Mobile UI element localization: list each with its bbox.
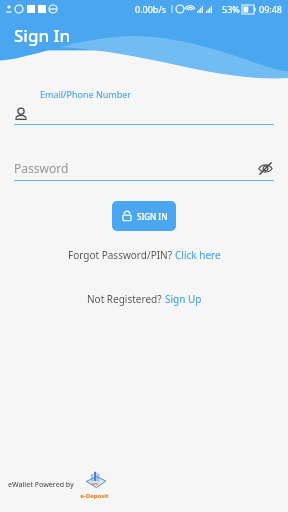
button[interactable]: Forgot Password/PIN?: [0, 248, 288, 262]
button[interactable]: Not Registered?: [0, 292, 288, 306]
button[interactable]: Show password: [256, 159, 274, 177]
staticText: Sign In: [14, 24, 71, 47]
staticText: Forgot Password/PIN?: [68, 248, 175, 262]
staticText: 09:48: [259, 3, 283, 15]
staticText: Sign Up: [165, 292, 202, 306]
staticText: eWallet Powered by: [8, 480, 74, 490]
button[interactable]: Password: [14, 159, 274, 177]
staticText: Click here: [175, 248, 221, 262]
staticText: SIGN IN: [137, 211, 168, 222]
staticText: e-Deposit: [80, 492, 109, 500]
staticText: 53%: [222, 3, 240, 15]
staticText: Not Registered?: [87, 292, 165, 306]
button[interactable]: [14, 106, 274, 122]
staticText: Password: [14, 160, 256, 176]
button[interactable]: SIGN IN: [112, 201, 176, 231]
staticText: Email/Phone Number: [40, 88, 132, 100]
staticText: 0.00b/s: [135, 3, 167, 15]
